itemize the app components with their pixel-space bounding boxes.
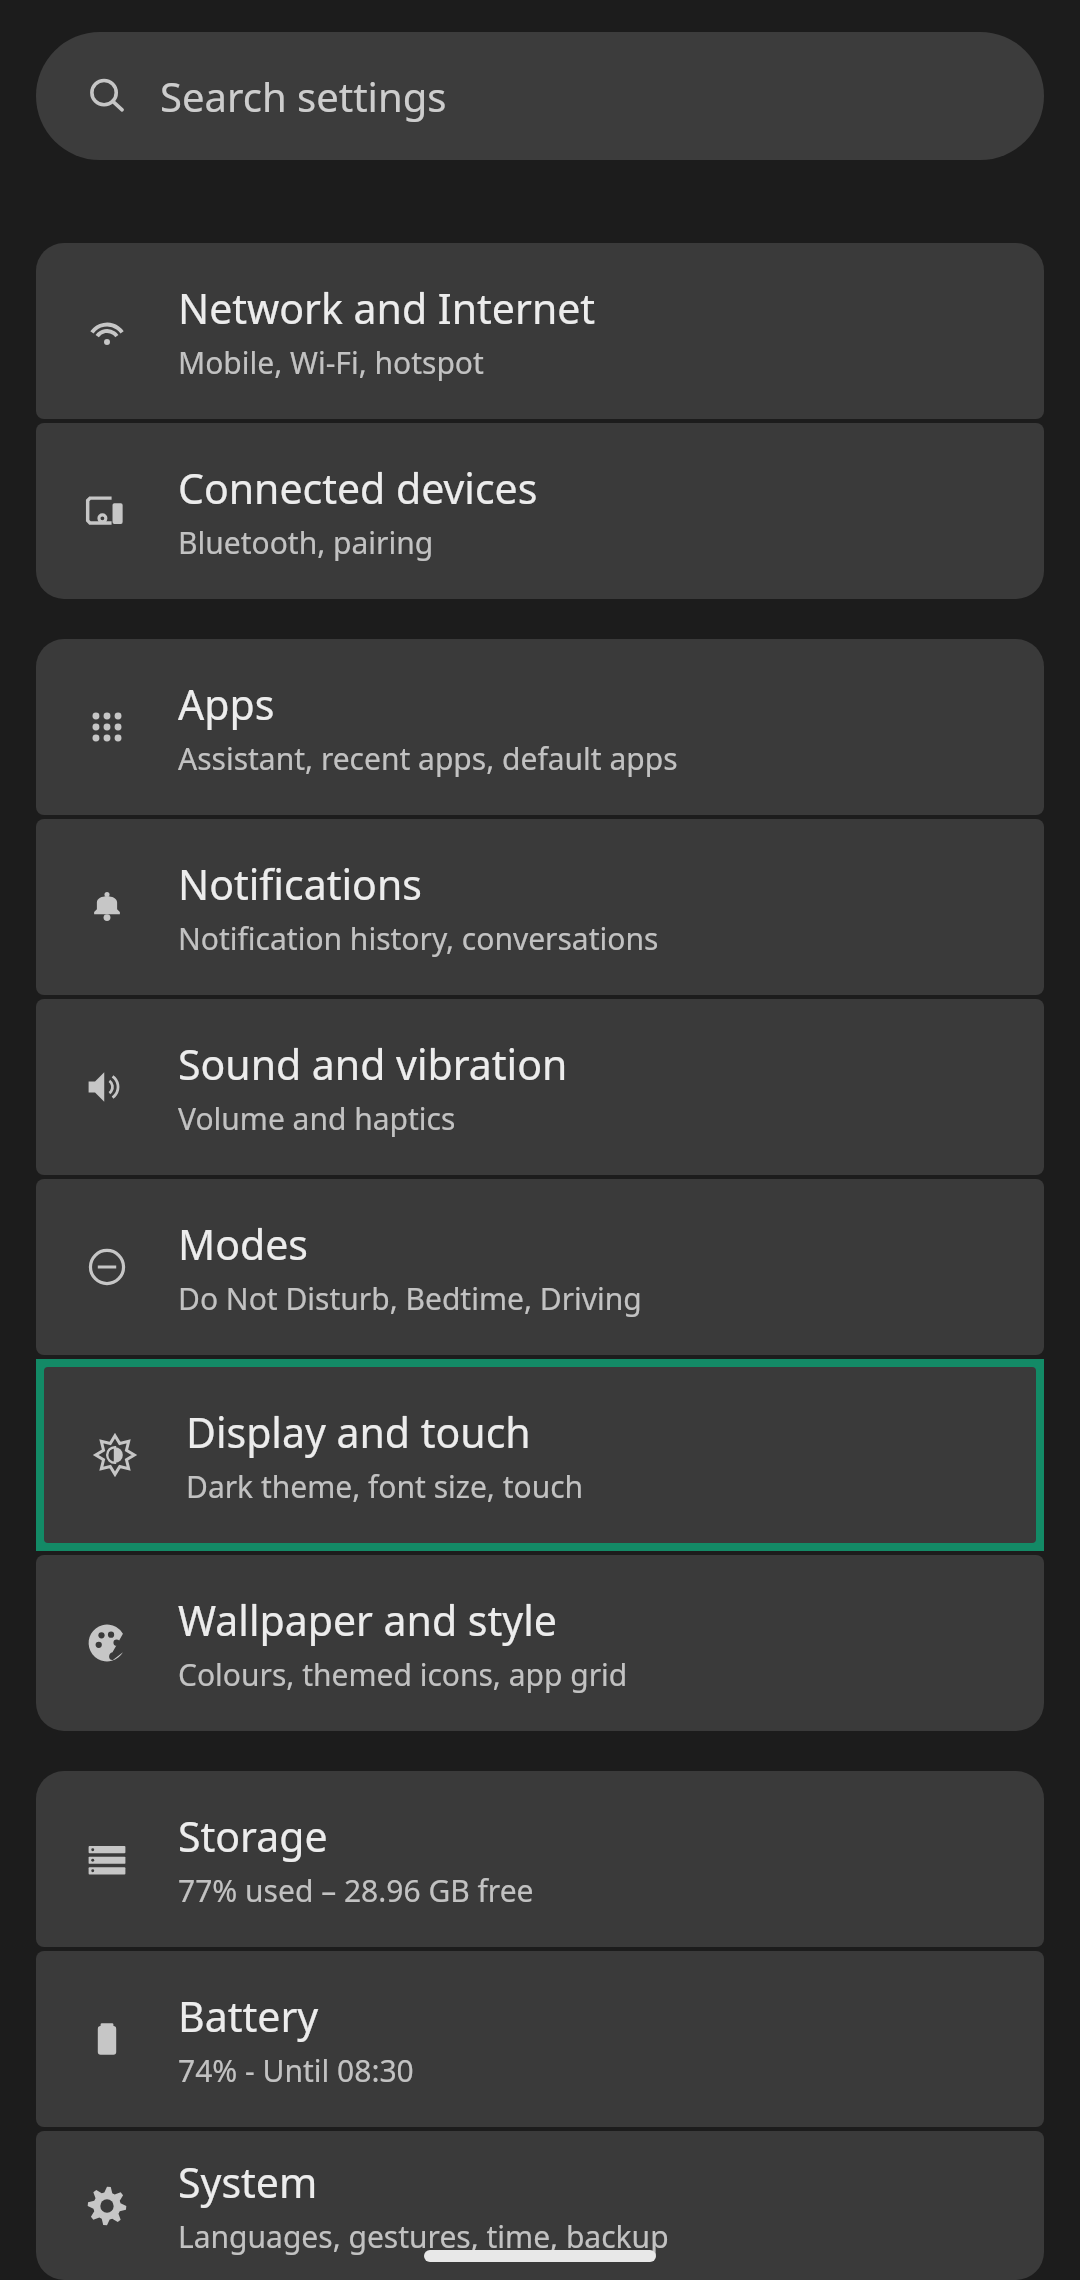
button[interactable]: Storage [36,1771,1044,1947]
button[interactable]: Display and touch [44,1367,1036,1543]
staticText: Search settings [160,69,447,123]
button[interactable]: Apps [36,639,1044,815]
button[interactable]: Battery [36,1951,1044,2127]
staticText: Display and touch [186,1404,531,1460]
staticText: Connected devices [178,460,538,516]
staticText: Wallpaper and style [178,1592,557,1648]
staticText: System [178,2154,318,2210]
staticText: Battery [178,1988,319,2044]
button[interactable]: Modes [36,1179,1044,1355]
staticText: 77% used – 28.96 GB free [178,1870,534,1911]
staticText: Network and Internet [178,280,596,336]
staticText: Dark theme, font size, touch [186,1466,584,1507]
button[interactable]: System [36,2131,1044,2280]
staticText: Do Not Disturb, Bedtime, Driving [178,1278,642,1319]
button[interactable]: Wallpaper and style [36,1555,1044,1731]
staticText: Languages, gestures, time, backup [178,2216,669,2257]
button[interactable]: Notifications [36,819,1044,995]
button[interactable]: Sound and vibration [36,999,1044,1175]
staticText: Mobile, Wi-Fi, hotspot [178,342,484,383]
button[interactable]: Search settings [36,32,1044,160]
staticText: Volume and haptics [178,1098,456,1139]
staticText: 74% - Until 08:30 [178,2050,414,2091]
staticText: Colours, themed icons, app grid [178,1654,628,1695]
staticText: Sound and vibration [178,1036,568,1092]
staticText: Notifications [178,856,422,912]
button[interactable]: Network and Internet [36,243,1044,419]
staticText: Assistant, recent apps, default apps [178,738,678,779]
staticText: Storage [178,1808,328,1864]
staticText: Apps [178,676,275,732]
staticText: Modes [178,1216,308,1272]
staticText: Bluetooth, pairing [178,522,434,563]
staticText: Notification history, conversations [178,918,659,959]
button[interactable]: Connected devices [36,423,1044,599]
